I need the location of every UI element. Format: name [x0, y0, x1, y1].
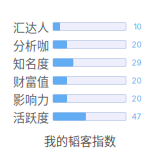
staticText: 20 [131, 94, 141, 103]
button[interactable]: 汇达人 [13, 17, 141, 35]
staticText: 20 [131, 76, 141, 85]
staticText: 影响力 [13, 91, 49, 108]
staticText: 10 [133, 22, 141, 31]
staticText: 活跃度 [13, 109, 49, 126]
button[interactable]: 知名度 [13, 53, 141, 71]
staticText: 知名度 [13, 55, 49, 72]
staticText: 分析咖 [13, 37, 49, 54]
button[interactable]: 影响力 [13, 89, 141, 107]
button[interactable]: 分析咖 [13, 35, 141, 53]
staticText: 47 [131, 112, 141, 121]
staticText: 我的韬客指数 [44, 132, 116, 150]
staticText: 财富值 [13, 73, 49, 90]
staticText: 20 [131, 40, 141, 49]
staticText: 29 [131, 58, 141, 67]
button[interactable]: 活跃度 [13, 107, 141, 125]
button[interactable]: 财富值 [13, 71, 141, 89]
staticText: 汇达人 [13, 19, 49, 36]
